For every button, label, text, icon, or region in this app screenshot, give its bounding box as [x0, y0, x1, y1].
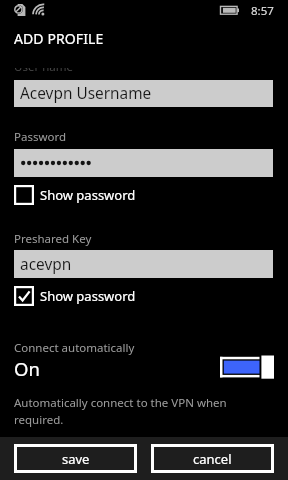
staticText: User name: [14, 59, 73, 75]
staticText: Acevpn Username: [20, 83, 152, 104]
button[interactable]: save: [14, 444, 137, 473]
button[interactable]: Connect automatically: [218, 353, 276, 381]
staticText: Preshared Key: [14, 231, 92, 247]
staticText: acevpn: [20, 254, 72, 275]
staticText: Show password: [40, 287, 136, 305]
button[interactable]: Show password: [14, 286, 154, 306]
button[interactable]: Acevpn Username: [14, 80, 273, 107]
button[interactable]: [14, 149, 273, 177]
button[interactable]: acevpn: [14, 250, 273, 278]
staticText: save: [62, 450, 90, 468]
staticText: cancel: [193, 450, 232, 468]
button[interactable]: Show password: [14, 185, 154, 205]
button[interactable]: cancel: [151, 444, 274, 473]
staticText: 8:57: [251, 3, 274, 19]
staticText: Automatically connect to the VPN when re…: [14, 395, 236, 428]
staticText: Password: [14, 129, 67, 145]
staticText: Show password: [40, 186, 136, 204]
staticText: On: [14, 356, 40, 381]
staticText: Connect automatically: [14, 340, 135, 356]
staticText: ADD PROFILE: [14, 29, 104, 48]
